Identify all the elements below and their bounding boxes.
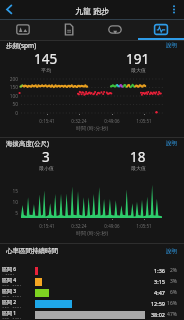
staticText: 0:15:41 (36, 223, 58, 229)
staticText: 區間 3 (2, 288, 17, 295)
staticText: 區間 1 (2, 310, 17, 317)
staticText: 10 (2, 199, 18, 206)
staticText: 區間 6 (2, 266, 17, 273)
button[interactable]: Map (0, 20, 46, 40)
staticText: 九龍 跑步 (75, 5, 110, 16)
staticText: 47% (166, 311, 177, 318)
button[interactable]: 區間 2 (0, 299, 184, 308)
staticText: 說明 (166, 248, 177, 255)
staticText: 0:49:06 (101, 118, 123, 124)
staticText: 最大值 (131, 165, 146, 171)
button[interactable]: More options (164, 0, 184, 20)
staticText: 最大值 (131, 67, 146, 73)
staticText: 18 (130, 148, 146, 166)
button[interactable]: Details (46, 20, 92, 40)
button[interactable]: Charts (138, 20, 184, 40)
staticText: 時間 (時:分:秒) (76, 230, 108, 237)
staticText: 0:15:41 (36, 118, 58, 124)
staticText: 3 (42, 148, 50, 166)
staticText: 38:02 (147, 311, 165, 318)
staticText: 145 (34, 50, 58, 68)
staticText: 200 (2, 76, 18, 83)
staticText: 6% (166, 289, 177, 296)
staticText: 3% (166, 278, 177, 285)
button[interactable]: 說明 (166, 140, 184, 147)
staticText: 143 - 153 bpm (2, 306, 29, 308)
staticText: 15 (2, 188, 18, 195)
staticText: 心率區間持續時間 (6, 247, 58, 255)
staticText: 說明 (166, 140, 177, 147)
staticText: 平均 (41, 67, 51, 73)
staticText: 154 - 160 bpm (2, 295, 29, 297)
staticText: 191 (126, 50, 150, 68)
staticText: 160 - 168 bpm (2, 284, 29, 286)
staticText: 16% (166, 300, 177, 307)
staticText: 0 (2, 110, 18, 117)
button[interactable]: Laps (92, 20, 138, 40)
button[interactable]: 區間 1 (0, 310, 184, 319)
staticText: 4:47 (147, 289, 165, 296)
staticText: 0:32:24 (68, 223, 90, 229)
staticText: 3:15 (147, 278, 165, 285)
button[interactable]: 說明 (166, 248, 184, 255)
staticText: 區間 2 (2, 299, 17, 306)
staticText: 區間 4 (2, 277, 17, 284)
staticText: 100 (2, 93, 18, 100)
staticText: 1:05:51 (133, 118, 155, 124)
staticText: 5 (2, 210, 18, 217)
staticText: 128 - 142 bpm (2, 317, 29, 319)
button[interactable]: 區間 6 (0, 266, 184, 275)
staticText: 海拔高度(公尺) (6, 139, 49, 148)
staticText: 0:32:24 (68, 118, 90, 124)
staticText: 說明 (166, 42, 177, 49)
staticText: 1:36 (147, 267, 165, 274)
staticText: 0:49:06 (101, 223, 123, 229)
button[interactable]: Back (0, 0, 20, 20)
staticText: 150 (2, 84, 18, 91)
button[interactable]: 區間 3 (0, 288, 184, 297)
staticText: 步頻(spm) (6, 41, 37, 50)
staticText: 50 (2, 101, 18, 108)
staticText: 時間 (時:分:秒) (76, 125, 108, 132)
staticText: 2% (166, 267, 177, 274)
staticText: 1:05:51 (133, 223, 155, 229)
staticText: 12:59 (147, 300, 165, 307)
button[interactable]: 區間 4 (0, 277, 184, 286)
staticText: 最小值 (39, 165, 54, 171)
staticText: > 168 bpm (2, 273, 22, 275)
button[interactable]: 說明 (166, 42, 184, 49)
